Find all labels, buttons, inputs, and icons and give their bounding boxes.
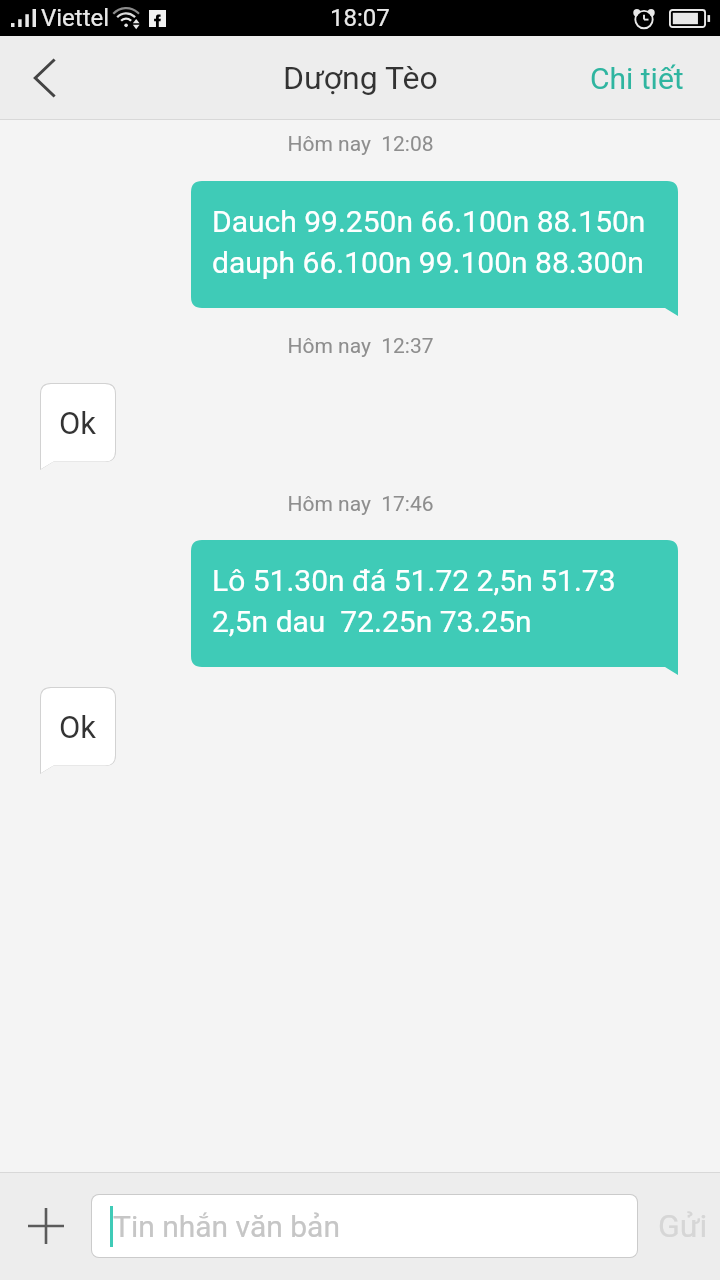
button[interactable]: Back — [0, 36, 88, 120]
staticText: Hôm nay 17:46 — [287, 492, 434, 517]
staticText: Tin nhắn văn bản — [113, 1209, 340, 1244]
button[interactable]: Chi tiết — [560, 36, 720, 120]
staticText: Lô 51.30n đá 51.72 2,5n 51.73 2,5n dau 7… — [212, 563, 616, 639]
button[interactable]: Ok — [40, 687, 116, 774]
staticText: Dauch 99.250n 66.100n 88.150n dauph 66.1… — [212, 204, 646, 280]
staticText: Hôm nay 12:08 — [287, 132, 434, 157]
staticText: Hôm nay 12:37 — [287, 334, 434, 359]
button[interactable]: Dauch 99.250n 66.100n 88.150n dauph 66.1… — [191, 181, 678, 316]
staticText: Ok — [59, 405, 97, 441]
button[interactable]: Ok — [40, 383, 116, 470]
button[interactable]: Gửi — [638, 1172, 720, 1280]
staticText: 18:07 — [330, 4, 390, 32]
staticText: Gửi — [658, 1207, 708, 1245]
staticText: Viettel — [41, 4, 110, 32]
staticText: Ok — [59, 709, 97, 745]
staticText: Chi tiết — [590, 61, 684, 96]
button[interactable]: Lô 51.30n đá 51.72 2,5n 51.73 2,5n dau 7… — [191, 540, 678, 675]
staticText: Dượng Tèo — [283, 59, 438, 97]
button[interactable]: Add attachment — [0, 1172, 91, 1280]
button[interactable]: Tin nhắn văn bản — [91, 1194, 638, 1258]
